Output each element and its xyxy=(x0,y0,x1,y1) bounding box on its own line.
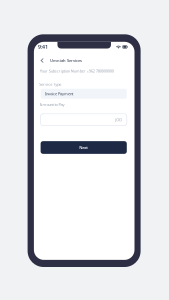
button[interactable]: Umniah Services xyxy=(34,55,134,65)
staticText: Your Subscription Number +962 780000000 xyxy=(40,68,114,74)
staticText: JOD xyxy=(115,117,122,122)
button[interactable]: Next xyxy=(41,141,127,154)
staticText: Umniah Services xyxy=(50,58,82,63)
staticText: Next xyxy=(79,145,88,150)
staticText: Invoice Payment xyxy=(45,91,73,96)
staticText: Amount to Pay xyxy=(40,102,65,107)
staticText: Service Type xyxy=(39,81,61,87)
staticText: 9:41 xyxy=(38,43,48,50)
